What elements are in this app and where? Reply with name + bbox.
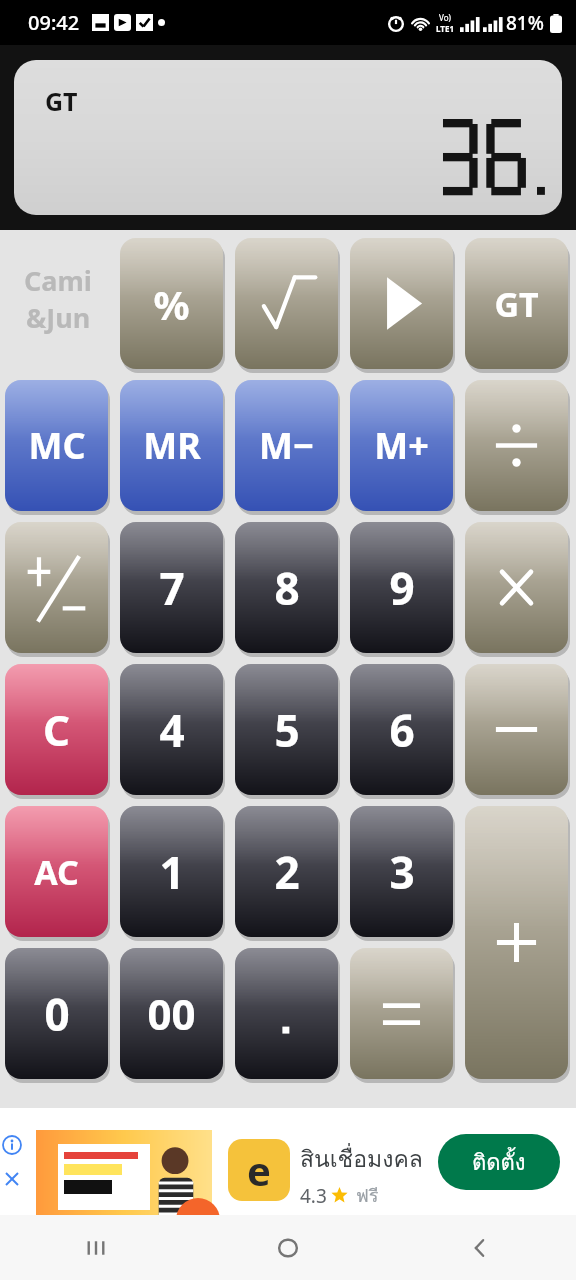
staticText: 8	[274, 558, 300, 618]
staticText: Vo)	[439, 12, 451, 23]
button[interactable]: M+	[350, 380, 453, 511]
staticText: e	[247, 1143, 271, 1197]
staticText: ฟรี	[356, 1181, 379, 1210]
button[interactable]: Minus	[465, 664, 568, 795]
button[interactable]: 2	[235, 806, 338, 937]
button[interactable]: Decimal point	[235, 948, 338, 1079]
button[interactable]: Square root	[235, 238, 338, 369]
button[interactable]: 9	[350, 522, 453, 653]
button[interactable]: Back	[384, 1215, 576, 1280]
staticText: ติดตั้ง	[472, 1145, 526, 1180]
button[interactable]: Ad information	[2, 1135, 22, 1155]
button[interactable]: Plus	[465, 806, 568, 1079]
staticText: C	[43, 701, 70, 758]
staticText: 1	[159, 842, 185, 902]
staticText: M+	[374, 421, 429, 470]
button[interactable]: Equals	[350, 948, 453, 1079]
staticText: 81%	[506, 10, 544, 36]
staticText: 4	[159, 700, 185, 760]
staticText: สินเชื่อมงคล	[300, 1141, 423, 1178]
staticText: %	[153, 277, 190, 331]
staticText: 2	[274, 842, 300, 902]
staticText: &Jun	[26, 299, 91, 336]
staticText: MR	[143, 421, 201, 470]
staticText: 9	[389, 558, 415, 618]
staticText: M−	[259, 421, 314, 470]
button[interactable]: 8	[235, 522, 338, 653]
staticText: 6	[389, 700, 415, 760]
staticText: 4.3	[300, 1183, 327, 1209]
staticText: MC	[28, 421, 86, 470]
staticText: GT	[494, 281, 539, 327]
staticText: 0	[44, 984, 70, 1044]
button[interactable]: Play	[350, 238, 453, 369]
button[interactable]: ติดตั้ง	[438, 1134, 560, 1190]
button[interactable]: Recent apps	[0, 1215, 192, 1280]
staticText: LTE1	[436, 23, 454, 34]
button[interactable]: MC	[5, 380, 108, 511]
staticText: Cami	[24, 262, 92, 299]
staticText: 00	[147, 985, 196, 1042]
staticText: AC	[34, 849, 79, 895]
button[interactable]: 4	[120, 664, 223, 795]
button[interactable]: 3	[350, 806, 453, 937]
button[interactable]: 7	[120, 522, 223, 653]
button[interactable]: %	[120, 238, 223, 369]
button[interactable]: GT	[465, 238, 568, 369]
button[interactable]: Plus minus sign	[5, 522, 108, 653]
button[interactable]: C	[5, 664, 108, 795]
button[interactable]: 1	[120, 806, 223, 937]
button[interactable]: M−	[235, 380, 338, 511]
button[interactable]: 5	[235, 664, 338, 795]
staticText: GT	[45, 84, 78, 118]
button[interactable]: Multiply	[465, 522, 568, 653]
button[interactable]: 00	[120, 948, 223, 1079]
button[interactable]: 6	[350, 664, 453, 795]
staticText: 3	[389, 842, 415, 902]
button[interactable]: Close ad	[2, 1169, 22, 1189]
staticText: 5	[274, 700, 300, 760]
button[interactable]: MR	[120, 380, 223, 511]
staticText: 09:42	[28, 9, 80, 36]
staticText: 7	[159, 558, 185, 618]
button[interactable]: AC	[5, 806, 108, 937]
button[interactable]: Divide	[465, 380, 568, 511]
button[interactable]: Home	[192, 1215, 384, 1280]
button[interactable]: 0	[5, 948, 108, 1079]
